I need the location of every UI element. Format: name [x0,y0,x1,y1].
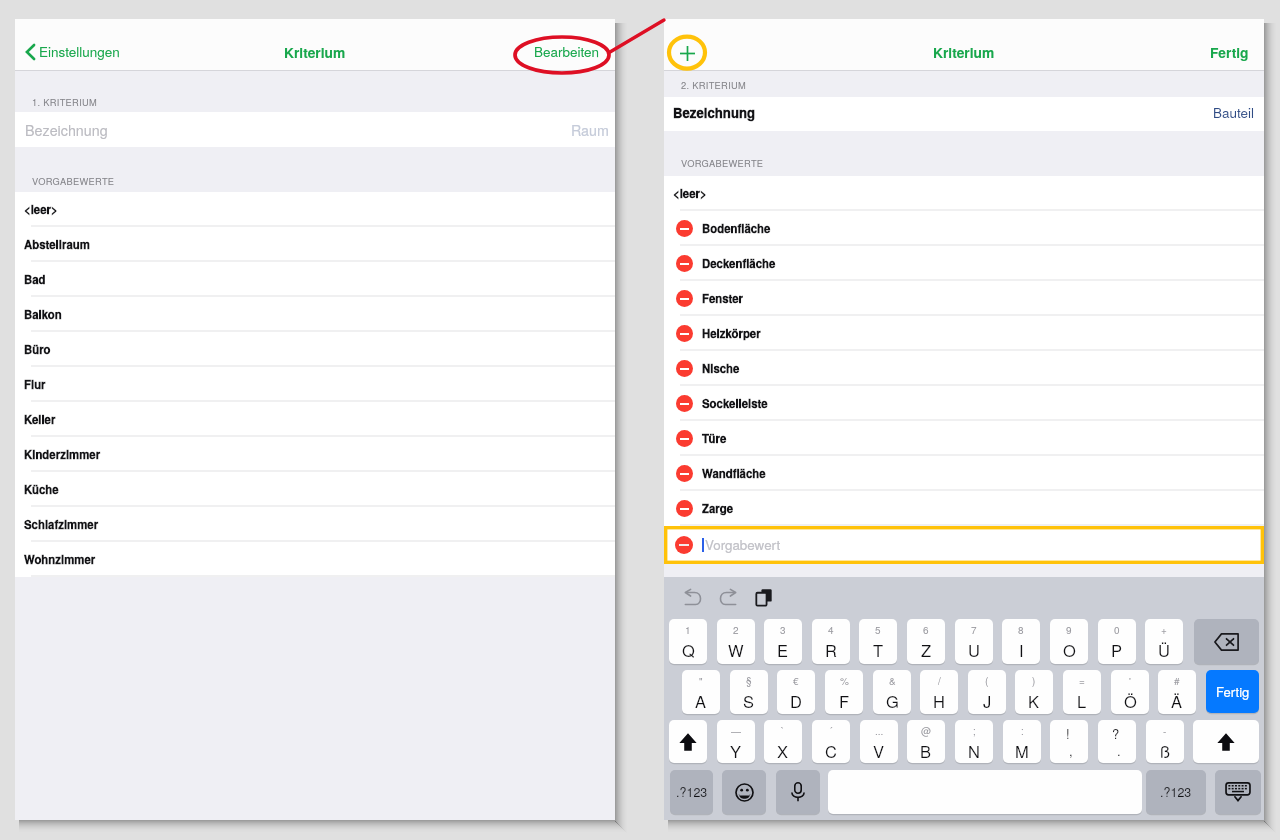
button[interactable]: / [920,670,958,714]
button[interactable]: " [682,670,720,714]
button[interactable]: = [1063,670,1101,714]
staticText: ` [781,724,785,738]
button[interactable]: <leer> [664,176,1264,211]
button[interactable]: Wiederholen [711,581,743,613]
button[interactable]: Schlafzimmer [15,507,615,542]
button[interactable]: Umschalttaste rechts [1193,720,1259,763]
button[interactable]: — [717,720,755,763]
button[interactable]: Keller [15,402,615,437]
staticText: Flur [24,376,46,392]
button[interactable]: Löschen Heizkörper [664,316,1264,351]
button[interactable]: @ [907,720,945,763]
button[interactable]: Löschen Fenster [664,281,1264,316]
staticText: P [1111,638,1123,662]
button[interactable]: Zahlen und Symbole [1146,770,1206,814]
button[interactable]: Einstellungen [26,42,120,61]
button[interactable]: 9 [1050,619,1088,664]
button[interactable]: ? [1098,720,1136,763]
other: Löschen Bodenfläche [676,220,693,237]
button[interactable]: 2 [717,619,755,664]
staticText: § [746,674,752,688]
button[interactable]: Küche [15,472,615,507]
button[interactable]: Bearbeiten [534,42,600,61]
button[interactable]: Löschtaste [1194,619,1259,664]
button[interactable]: <leer> [15,192,615,227]
button[interactable]: Fertig [1206,670,1259,713]
staticText: Ä [1171,689,1183,713]
staticText: Fenster [702,290,744,306]
button[interactable]: Rückgängig [677,581,709,613]
staticText: VORGABEWERTE [681,156,764,169]
staticText: + [1161,623,1167,637]
button[interactable]: 7 [955,619,993,664]
staticText: .?123 [676,783,708,801]
staticText: ' [1129,674,1131,688]
button[interactable]: : [1003,720,1041,763]
button[interactable]: 6 [907,619,945,664]
button[interactable]: Umschalttaste [669,720,707,763]
button[interactable]: & [873,670,911,714]
staticText: Q [682,638,695,662]
button[interactable]: ´ [812,720,850,763]
button[interactable]: Löschen Türe [664,421,1264,456]
staticText: Kriterium [284,42,346,62]
button[interactable]: Balkon [15,297,615,332]
button[interactable]: Löschen [664,526,1264,564]
button[interactable]: Emoji [722,770,766,814]
button[interactable]: Abstellraum [15,227,615,262]
staticText: 8 [1018,623,1024,637]
staticText: V [873,739,885,763]
button[interactable]: + [1145,619,1183,664]
staticText: Deckenfläche [702,255,776,271]
button[interactable]: - [1146,720,1184,763]
staticText: 1. KRITERIUM [32,95,98,108]
button[interactable]: Wohnzimmer [15,542,615,577]
button[interactable]: Diktat [776,770,820,814]
button[interactable]: ; [955,720,993,763]
button[interactable]: € [777,670,815,714]
button[interactable]: 0 [1098,619,1136,664]
button[interactable]: Einsetzen [748,581,780,613]
button[interactable]: 1 [669,619,707,664]
button[interactable]: ... [860,720,898,763]
button[interactable]: Tastatur ausblenden [1215,770,1261,814]
button[interactable]: Löschen Sockelleiste [664,386,1264,421]
button[interactable]: 8 [1002,619,1040,664]
button[interactable]: Löschen Deckenfläche [664,246,1264,281]
staticText: 2. KRITERIUM [681,78,747,91]
button[interactable]: ( [968,670,1006,714]
button[interactable]: 4 [812,619,850,664]
staticText: 2 [733,623,739,637]
staticText: " [699,674,703,688]
staticText: Bad [24,271,46,287]
button[interactable]: Bezeichnung [15,112,615,147]
button[interactable]: Löschen Zarge [664,491,1264,526]
staticText: Y [730,739,742,763]
staticText: <leer> [673,185,707,201]
button[interactable]: Büro [15,332,615,367]
button[interactable]: ` [764,720,802,763]
button[interactable]: Kinderzimmer [15,437,615,472]
button[interactable]: § [730,670,768,714]
button[interactable]: Bezeichnung [664,97,1264,131]
button[interactable]: 3 [764,619,802,664]
staticText: W [728,638,744,662]
staticText: Bezeichnung [673,103,756,122]
button[interactable]: Löschen Nische [664,351,1264,386]
button[interactable]: 5 [859,619,897,664]
button[interactable]: Löschen Bodenfläche [664,211,1264,246]
button[interactable]: Hinzufügen [674,40,700,66]
button[interactable]: ) [1015,670,1053,714]
button[interactable]: # [1158,670,1196,714]
button[interactable]: Zahlen und Symbole [670,770,713,814]
button[interactable]: Löschen Wandfläche [664,456,1264,491]
button[interactable]: Bad [15,262,615,297]
button[interactable]: Fertig [1210,42,1249,62]
other: Löschen [675,536,693,554]
staticText: / [938,674,941,688]
button[interactable]: ! [1050,720,1088,763]
button[interactable]: % [825,670,863,714]
button[interactable]: Flur [15,367,615,402]
button[interactable]: ' [1111,670,1149,714]
